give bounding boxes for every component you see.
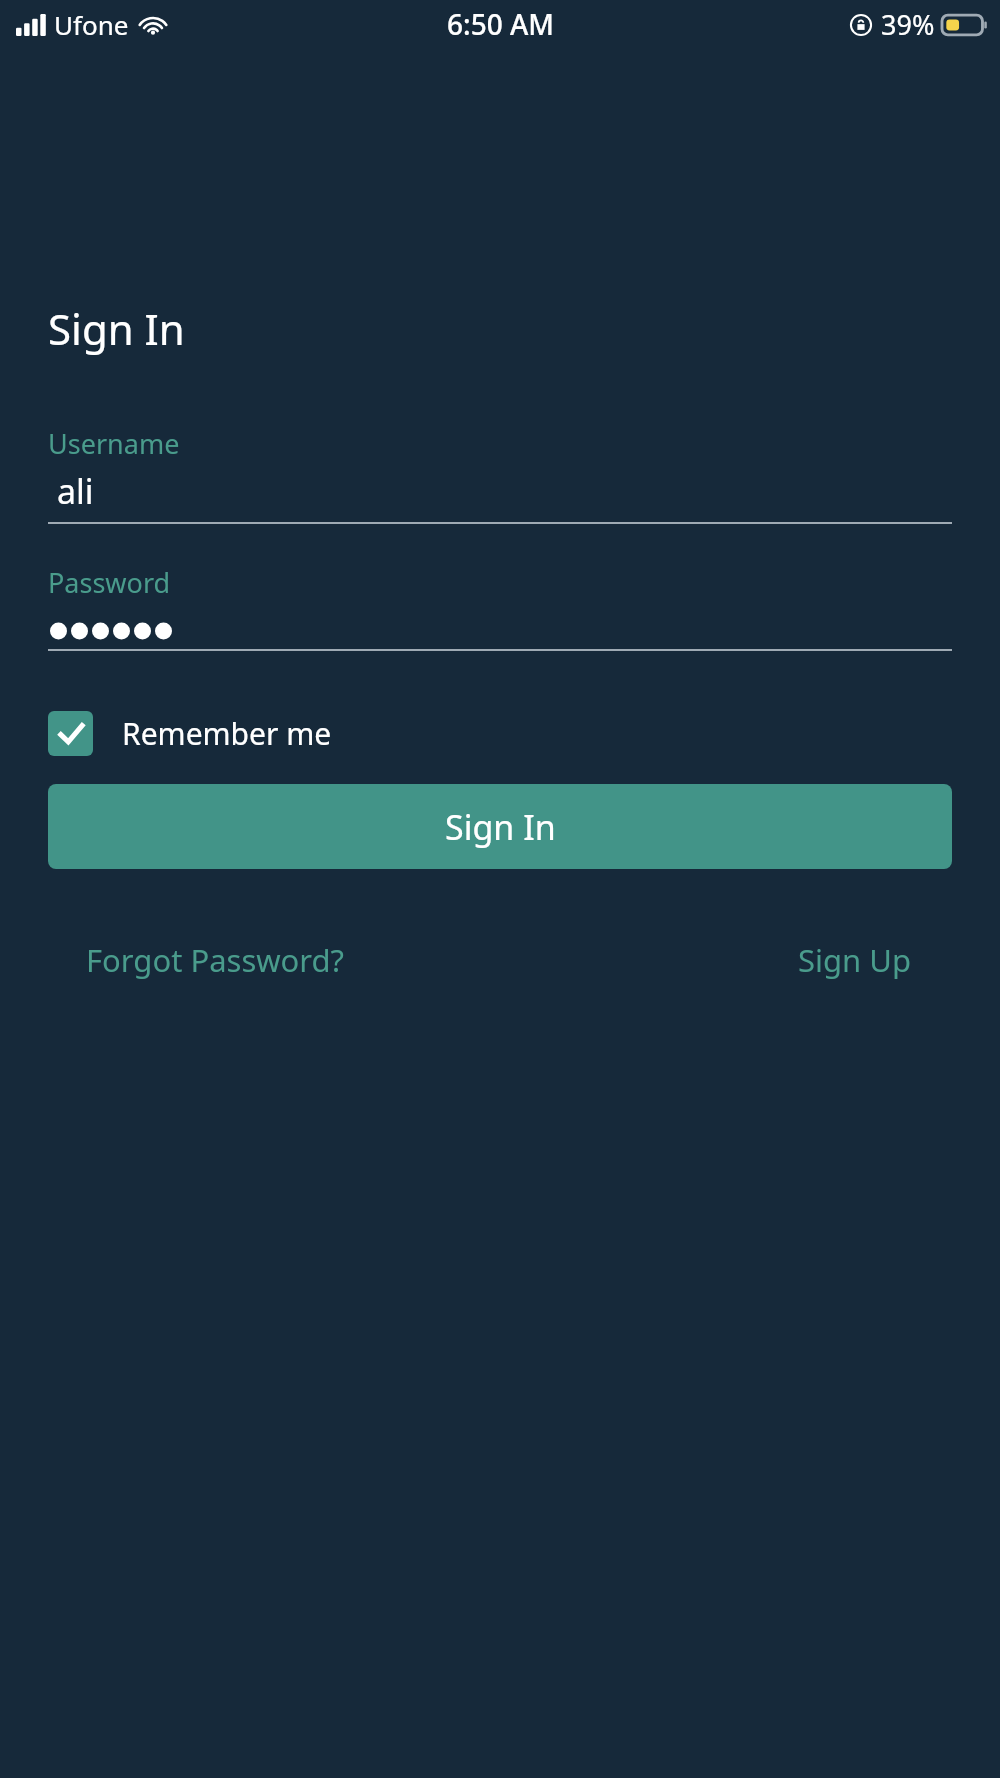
staticText: Ufone (54, 7, 129, 42)
staticText: ali (57, 468, 94, 514)
staticText: 6:50 AM (447, 5, 554, 43)
staticText: Forgot Password? (86, 939, 345, 981)
staticText: Sign Up (798, 939, 912, 981)
staticText: Sign In (48, 300, 185, 357)
button[interactable]: Password field (48, 613, 952, 649)
button[interactable]: Sign In (48, 784, 952, 869)
staticText: Remember me (122, 713, 332, 754)
staticText: Sign In (445, 804, 556, 850)
button[interactable]: ali (48, 468, 952, 522)
button[interactable]: Remember me (48, 711, 332, 756)
button[interactable]: Forgot Password? (48, 939, 345, 981)
staticText: Password (48, 564, 171, 601)
button[interactable]: Sign Up (798, 939, 952, 981)
staticText: Username (48, 425, 180, 462)
staticText: 39% (881, 6, 935, 43)
